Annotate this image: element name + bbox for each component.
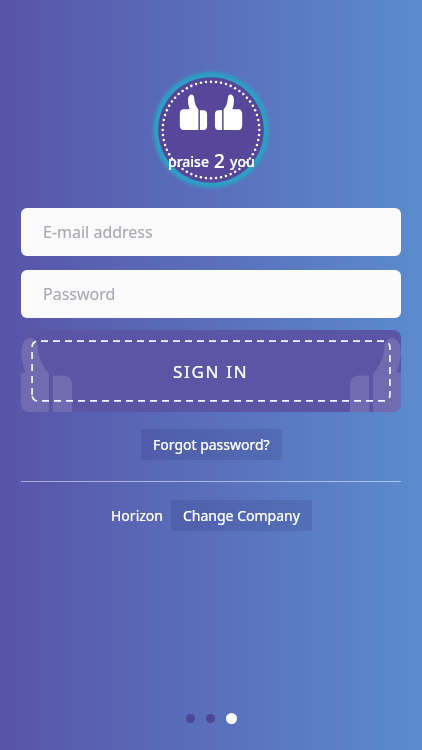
staticText: Password (43, 283, 116, 305)
staticText: praise (168, 152, 209, 171)
button[interactable]: SIGN IN (21, 330, 401, 412)
staticText: Change Company (183, 506, 300, 525)
staticText: E-mail address (43, 221, 153, 243)
staticText: 2 (209, 148, 230, 174)
staticText: SIGN IN (173, 360, 249, 383)
staticText: Horizon (111, 506, 163, 525)
staticText: you (230, 152, 255, 171)
other: Page 3 of 3 (186, 713, 237, 724)
button[interactable]: E-mail address (21, 208, 401, 256)
button[interactable]: Forgot password? (141, 429, 282, 460)
button[interactable]: Change Company (171, 500, 312, 531)
staticText: Forgot password? (153, 435, 270, 454)
button[interactable]: Password (21, 270, 401, 318)
